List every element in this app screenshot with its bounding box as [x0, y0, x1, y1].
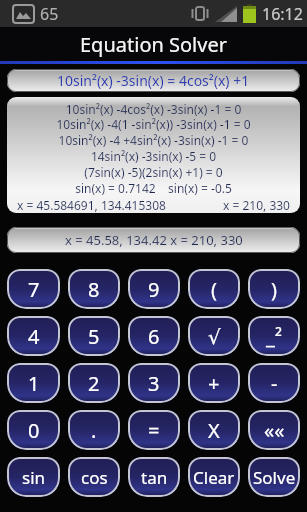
staticText: (: [211, 276, 217, 303]
button[interactable]: 5: [68, 316, 120, 356]
staticText: x = 45.58, 134.42 x = 210, 330: [65, 231, 243, 249]
button[interactable]: 4: [7, 316, 60, 356]
button[interactable]: √: [188, 316, 240, 356]
staticText: tan: [141, 466, 168, 489]
button[interactable]: 1: [7, 363, 60, 403]
staticText: sin: [22, 466, 46, 489]
staticText: cos: [81, 466, 108, 489]
staticText: +: [208, 370, 220, 397]
staticText: 1: [28, 370, 40, 397]
button[interactable]: 10sin²(x) -3sin(x) = 4cos²(x) +1: [7, 69, 300, 92]
staticText: -: [271, 370, 278, 397]
button[interactable]: sin: [7, 457, 60, 497]
staticText: x = 210, 330: [223, 197, 290, 213]
staticText: _²: [266, 323, 282, 350]
button[interactable]: _²: [248, 316, 300, 356]
button[interactable]: cos: [68, 457, 120, 497]
button[interactable]: Solve: [248, 457, 300, 497]
staticText: .: [91, 417, 97, 444]
staticText: 16:12: [262, 3, 303, 25]
staticText: 10sin²(x) -4cos²(x) -3sin(x) -1 = 0 10si…: [7, 101, 300, 197]
button[interactable]: =: [128, 410, 180, 450]
staticText: 10sin²(x) -3sin(x) = 4cos²(x) +1: [57, 71, 250, 90]
staticText: 8: [88, 276, 100, 303]
button[interactable]: ««: [248, 410, 300, 450]
staticText: Clear: [193, 466, 235, 489]
staticText: ): [271, 276, 277, 303]
staticText: ««: [264, 417, 285, 444]
button[interactable]: 9: [128, 269, 180, 309]
staticText: 2: [88, 370, 100, 397]
button[interactable]: 2: [68, 363, 120, 403]
staticText: 3: [148, 370, 160, 397]
button[interactable]: (: [188, 269, 240, 309]
button[interactable]: .: [68, 410, 120, 450]
staticText: X: [208, 417, 220, 444]
button[interactable]: 6: [128, 316, 180, 356]
button[interactable]: -: [248, 363, 300, 403]
staticText: 65: [40, 3, 59, 25]
staticText: 0: [28, 417, 40, 444]
button[interactable]: ): [248, 269, 300, 309]
staticText: Equation Solver: [80, 31, 227, 58]
staticText: =: [148, 417, 160, 444]
staticText: Solve: [253, 466, 296, 489]
button[interactable]: X: [188, 410, 240, 450]
staticText: 4: [28, 323, 40, 350]
button[interactable]: 7: [7, 269, 60, 309]
staticText: 6: [148, 323, 160, 350]
staticText: 5: [88, 323, 100, 350]
button[interactable]: 8: [68, 269, 120, 309]
staticText: 7: [28, 276, 40, 303]
button[interactable]: +: [188, 363, 240, 403]
staticText: √: [208, 325, 221, 348]
staticText: 9: [148, 276, 160, 303]
button[interactable]: 3: [128, 363, 180, 403]
staticText: x = 45.584691, 134.415308: [17, 197, 166, 213]
button[interactable]: 0: [7, 410, 60, 450]
button[interactable]: tan: [128, 457, 180, 497]
button[interactable]: Clear: [188, 457, 240, 497]
